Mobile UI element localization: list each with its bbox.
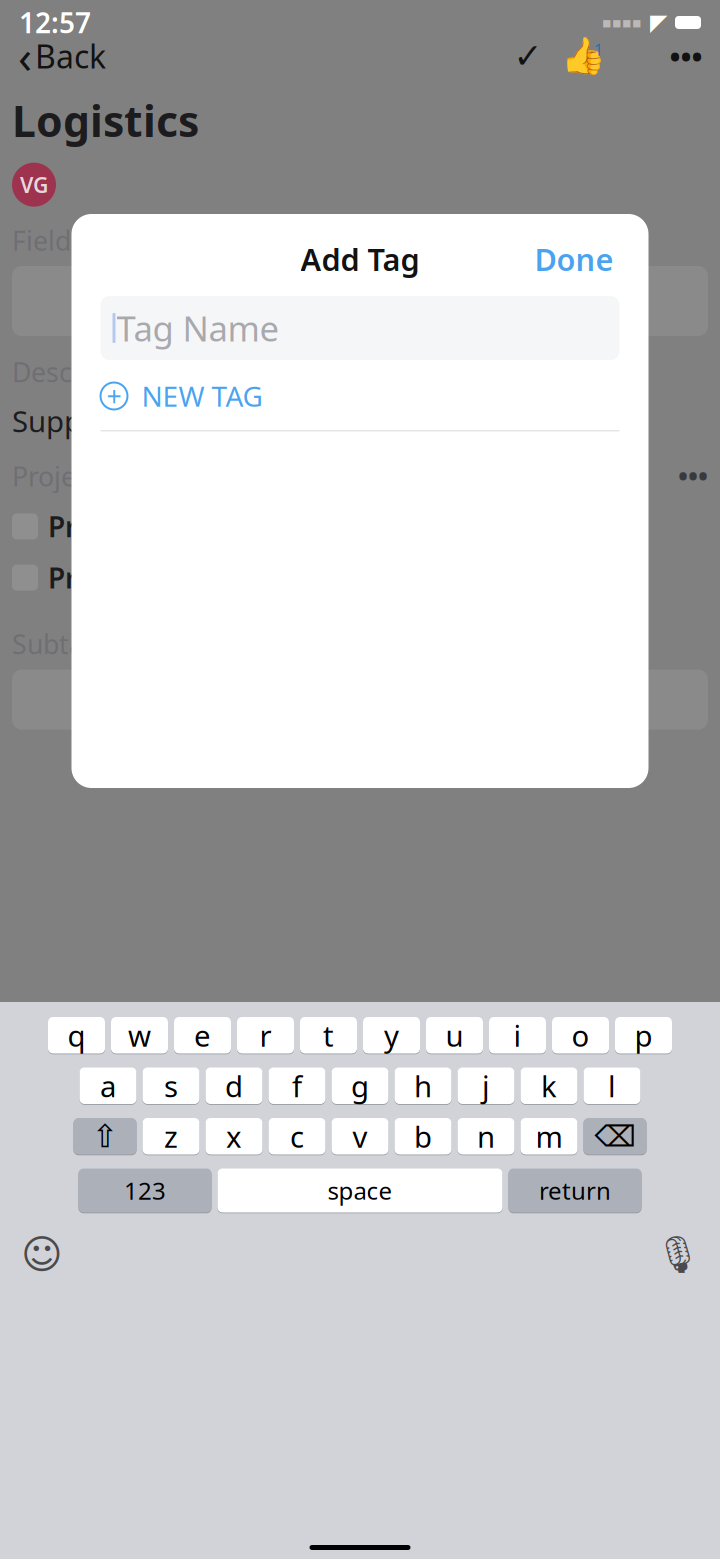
button[interactable]: + (71, 368, 648, 424)
button[interactable]: t (300, 1016, 357, 1054)
staticText: VG (20, 170, 48, 199)
staticText: g (351, 1066, 369, 1105)
staticText: x (226, 1117, 242, 1156)
staticText: return (539, 1175, 611, 1206)
staticText: Project upgrade 2.0 (48, 559, 313, 596)
staticText: Supply chain plan (12, 401, 255, 440)
staticText: u (445, 1016, 463, 1055)
button[interactable]: g (331, 1066, 388, 1105)
staticText: Description (12, 354, 155, 389)
staticText: r (259, 1016, 271, 1055)
staticText: q (67, 1016, 85, 1055)
staticText: j (482, 1066, 490, 1105)
staticText: ⌫ (594, 1120, 635, 1153)
staticText: ✓ (513, 36, 542, 76)
staticText: Tag Name (116, 305, 279, 351)
staticText: s (164, 1066, 178, 1105)
staticText: ••• (669, 36, 702, 75)
button[interactable]: h (394, 1066, 451, 1105)
staticText: h (414, 1066, 432, 1105)
staticText: ☺ (21, 1232, 63, 1277)
staticText: n (477, 1117, 495, 1156)
button[interactable]: b (394, 1117, 451, 1155)
button[interactable]: Emoji (16, 1231, 68, 1277)
staticText: Product Management (48, 508, 344, 545)
button[interactable]: x (205, 1117, 262, 1155)
staticText: p (634, 1016, 652, 1055)
button[interactable]: o (552, 1016, 609, 1054)
button[interactable]: Done (528, 233, 619, 285)
staticText: y (384, 1016, 399, 1055)
staticText: f (292, 1066, 302, 1105)
button[interactable]: Like (560, 34, 606, 78)
staticText: space (327, 1175, 392, 1206)
staticText: o (571, 1016, 589, 1055)
button[interactable]: l (583, 1066, 640, 1105)
staticText: ⇧ (91, 1118, 118, 1154)
button[interactable]: Dictation (652, 1231, 704, 1277)
staticText: Add Tag (300, 239, 419, 279)
button[interactable]: Shift (73, 1117, 136, 1155)
staticText: Done (534, 239, 613, 279)
button[interactable]: e (174, 1016, 231, 1054)
staticText: Subtasks (12, 626, 124, 662)
staticText: e (194, 1016, 211, 1055)
button[interactable]: d (205, 1066, 262, 1105)
staticText: NEW TAG (141, 377, 262, 415)
staticText: Projects (12, 458, 112, 494)
staticText: c (290, 1117, 304, 1156)
staticText: i (513, 1016, 521, 1055)
staticText: ◤ (650, 10, 667, 35)
button[interactable]: c (268, 1117, 325, 1155)
staticText: Fields (12, 223, 84, 258)
button[interactable]: s (142, 1066, 199, 1105)
button[interactable]: More options (664, 34, 708, 78)
staticText: ▪▪▪▪ (602, 14, 642, 31)
staticText: a (100, 1066, 116, 1105)
button[interactable]: q (48, 1016, 105, 1054)
staticText: v (352, 1117, 367, 1156)
staticText: 12:57 (19, 4, 91, 41)
button[interactable]: a (79, 1066, 136, 1105)
staticText: 🎙 (655, 1234, 701, 1275)
staticText: Back (35, 35, 106, 77)
staticText: b (414, 1117, 432, 1156)
staticText: + (106, 378, 121, 414)
button[interactable]: u (426, 1016, 483, 1054)
button[interactable]: 123 (78, 1167, 211, 1213)
staticText: ••• (678, 458, 708, 494)
staticText: ‹ (18, 26, 32, 86)
button[interactable]: f (268, 1066, 325, 1105)
staticText: Logistics (12, 92, 199, 149)
button[interactable]: k (520, 1066, 577, 1105)
button[interactable]: r (237, 1016, 294, 1054)
button[interactable]: y (363, 1016, 420, 1054)
staticText: 123 (124, 1175, 166, 1206)
button[interactable]: p (615, 1016, 672, 1054)
button[interactable]: v (331, 1117, 388, 1155)
staticText: 👍 (560, 35, 605, 76)
staticText: z (164, 1117, 178, 1156)
button[interactable]: Delete (583, 1117, 646, 1155)
button[interactable]: m (520, 1117, 577, 1155)
staticText: d (225, 1066, 243, 1105)
staticText: m (535, 1117, 562, 1156)
button[interactable]: j (457, 1066, 514, 1105)
button[interactable]: Complete task (506, 34, 550, 78)
button[interactable]: i (489, 1016, 546, 1054)
button[interactable]: w (111, 1016, 168, 1054)
button[interactable]: z (142, 1117, 199, 1155)
button[interactable]: n (457, 1117, 514, 1155)
staticText: 1 (594, 39, 603, 60)
button[interactable]: space (217, 1167, 502, 1213)
staticText: t (323, 1016, 334, 1055)
button[interactable]: return (508, 1167, 641, 1213)
staticText: w (128, 1016, 151, 1055)
staticText: k (541, 1066, 557, 1105)
button[interactable]: ‹ (12, 34, 112, 78)
staticText: l (608, 1066, 616, 1105)
